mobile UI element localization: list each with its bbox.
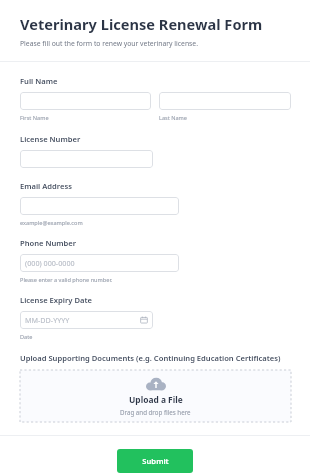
- button[interactable]: [20, 92, 151, 110]
- button[interactable]: [20, 150, 153, 168]
- staticText: License Number: [20, 134, 81, 144]
- staticText: Date: [20, 333, 33, 341]
- staticText: example@example.com: [20, 219, 83, 227]
- button[interactable]: Upload a File, drag and drop files here: [20, 370, 291, 422]
- button[interactable]: (000) 000-0000: [20, 254, 179, 272]
- other: Upload a file: [146, 377, 166, 391]
- button[interactable]: [20, 197, 179, 215]
- staticText: Upload a File: [129, 394, 183, 405]
- staticText: (000) 000-0000: [25, 258, 174, 268]
- staticText: Full Name: [20, 76, 58, 86]
- button[interactable]: Submit: [117, 449, 193, 473]
- staticText: Submit: [142, 456, 169, 466]
- button[interactable]: [159, 92, 291, 110]
- staticText: Veterinary License Renewal Form: [20, 14, 263, 34]
- staticText: License Expiry Date: [20, 295, 92, 305]
- staticText: Phone Number: [20, 238, 77, 248]
- staticText: Please enter a valid phone number.: [20, 276, 113, 284]
- staticText: Please fill out the form to renew your v…: [20, 39, 199, 48]
- staticText: Email Address: [20, 181, 72, 191]
- button[interactable]: MM-DD-YYYY: [20, 311, 153, 329]
- staticText: Upload Supporting Documents (e.g. Contin…: [20, 353, 281, 363]
- staticText: First Name: [20, 114, 49, 122]
- staticText: MM-DD-YYYY: [25, 315, 140, 325]
- staticText: Drag and drop files here: [120, 408, 191, 416]
- other: Pick date: [140, 316, 148, 324]
- staticText: Last Name: [159, 114, 187, 122]
